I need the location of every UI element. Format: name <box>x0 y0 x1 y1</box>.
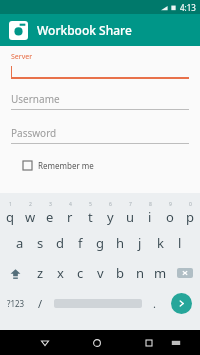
button[interactable]: c <box>70 258 90 288</box>
button[interactable]: a <box>10 228 30 258</box>
staticText: j <box>138 234 142 252</box>
button[interactable]: Server <box>11 52 189 79</box>
staticText: q <box>6 208 14 226</box>
button[interactable]: 5 <box>80 198 100 228</box>
staticText: l <box>178 234 182 252</box>
staticText: 7 <box>129 201 132 208</box>
staticText: 4 <box>69 201 72 208</box>
button[interactable]: Hide keyboard <box>162 330 189 355</box>
button[interactable]: v <box>90 258 110 288</box>
staticText: c <box>77 264 84 282</box>
button[interactable]: Remember me <box>11 158 94 173</box>
button[interactable]: b <box>110 258 130 288</box>
button[interactable]: Recent apps <box>135 330 162 355</box>
staticText: x <box>57 264 64 282</box>
staticText: h <box>116 234 125 252</box>
staticText: z <box>37 264 44 282</box>
staticText: Workbook Share <box>37 22 132 38</box>
button[interactable]: g <box>90 228 110 258</box>
button[interactable]: d <box>50 228 70 258</box>
button[interactable]: z <box>30 258 50 288</box>
button[interactable]: / <box>31 288 50 318</box>
button[interactable]: 0 <box>180 198 200 228</box>
button[interactable]: ?123 <box>0 288 31 318</box>
staticText: r <box>67 208 73 226</box>
staticText: n <box>136 264 145 282</box>
button[interactable]: 4 <box>60 198 80 228</box>
staticText: / <box>38 296 43 311</box>
staticText: 0 <box>189 201 192 208</box>
button[interactable]: Space <box>50 288 146 318</box>
button[interactable]: k <box>150 228 170 258</box>
button[interactable]: App icon <box>9 21 28 40</box>
button[interactable]: Backspace <box>170 258 200 288</box>
button[interactable]: Back <box>31 330 58 355</box>
button[interactable]: Password <box>11 126 189 144</box>
staticText: 9 <box>169 201 172 208</box>
staticText: d <box>56 234 64 252</box>
staticText: 4:13 <box>180 2 196 13</box>
staticText: s <box>37 234 44 252</box>
button[interactable]: 7 <box>120 198 140 228</box>
button[interactable]: Home <box>83 330 110 355</box>
staticText: t <box>88 208 93 226</box>
staticText: Server <box>11 52 33 62</box>
staticText: 8 <box>149 201 152 208</box>
staticText: Username <box>11 92 60 106</box>
staticText: m <box>154 264 167 282</box>
button[interactable]: l <box>170 228 190 258</box>
staticText: 6 <box>109 201 112 208</box>
staticText: . <box>153 296 156 311</box>
button[interactable]: x <box>50 258 70 288</box>
staticText: Password <box>11 126 57 140</box>
staticText: g <box>96 234 104 252</box>
staticText: y <box>107 208 114 226</box>
staticText: Remember me <box>38 160 94 171</box>
staticText: b <box>116 264 124 282</box>
button[interactable]: 8 <box>140 198 160 228</box>
button[interactable]: 6 <box>100 198 120 228</box>
button[interactable]: 1 <box>0 198 20 228</box>
staticText: 3 <box>49 201 52 208</box>
button[interactable]: Username <box>11 92 189 110</box>
button[interactable]: Enter <box>163 288 200 318</box>
staticText: k <box>157 234 164 252</box>
button[interactable]: j <box>130 228 150 258</box>
staticText: v <box>97 264 104 282</box>
staticText: w <box>25 208 36 226</box>
button[interactable]: 3 <box>40 198 60 228</box>
button[interactable]: s <box>30 228 50 258</box>
staticText: a <box>16 234 24 252</box>
staticText: 2 <box>29 201 32 208</box>
button[interactable]: n <box>130 258 150 288</box>
button[interactable]: . <box>146 288 163 318</box>
staticText: e <box>46 208 54 226</box>
staticText: ?123 <box>7 298 25 309</box>
staticText: 5 <box>89 201 92 208</box>
button[interactable]: 9 <box>160 198 180 228</box>
staticText: 1 <box>9 201 12 208</box>
button[interactable]: 2 <box>20 198 40 228</box>
staticText: i <box>148 208 152 226</box>
button[interactable]: h <box>110 228 130 258</box>
staticText: o <box>166 208 174 226</box>
staticText: p <box>186 208 194 226</box>
staticText: u <box>126 208 135 226</box>
staticText: f <box>78 234 83 252</box>
button[interactable]: Shift <box>0 258 30 288</box>
button[interactable]: m <box>150 258 170 288</box>
button[interactable]: f <box>70 228 90 258</box>
